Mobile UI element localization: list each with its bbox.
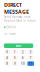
staticText: 4 — [6, 56, 8, 60]
button[interactable]: 5 — [12, 56, 18, 60]
button[interactable]: 1 — [12, 50, 18, 54]
staticText: To: team — [4, 32, 15, 35]
button[interactable]: 7 — [27, 56, 34, 60]
staticText: 8 — [6, 62, 8, 65]
staticText: 3 — [30, 50, 32, 54]
staticText: 2 — [22, 50, 24, 54]
staticText: 6 — [22, 56, 24, 60]
staticText: Replies land in inbox — [4, 19, 35, 22]
staticText: SEND — [15, 44, 21, 47]
button[interactable]: 3 — [27, 50, 34, 54]
staticText: 7 — [30, 56, 32, 60]
button[interactable]: 0 — [4, 50, 11, 54]
staticText: DIRECT MESSAGE — [4, 1, 29, 15]
button[interactable]: 6 — [20, 56, 26, 60]
staticText: 9 — [14, 62, 16, 65]
staticText: 5 — [14, 56, 16, 60]
staticText: 0 — [6, 50, 8, 54]
button[interactable]: 9 — [12, 61, 18, 66]
button[interactable]: 4 — [4, 56, 11, 60]
button[interactable]: SEND — [4, 43, 33, 48]
staticText: Online — [7, 25, 17, 29]
staticText: Send a private note — [4, 15, 31, 19]
staticText: 11 — [29, 62, 33, 65]
staticText: 10 — [21, 62, 25, 65]
button[interactable]: 11 — [27, 61, 34, 66]
staticText: 1 — [14, 50, 16, 54]
button[interactable]: 8 — [4, 61, 11, 66]
button[interactable]: 2 — [20, 50, 26, 54]
button[interactable]: 10 — [20, 61, 26, 66]
